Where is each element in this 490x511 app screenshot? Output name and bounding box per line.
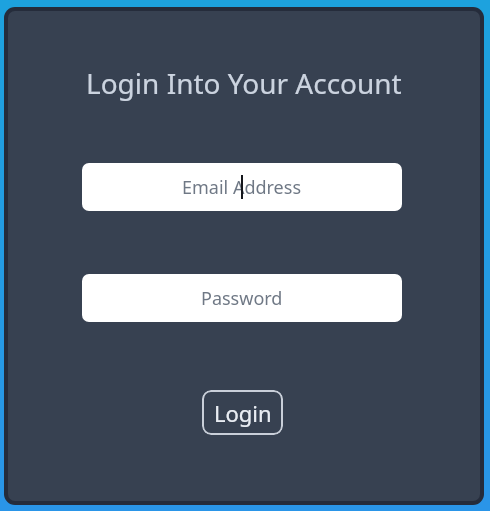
button[interactable]: Email Address	[82, 163, 402, 211]
button[interactable]: Password	[82, 274, 402, 322]
staticText: Email Address	[182, 175, 302, 200]
staticText: Login	[214, 398, 272, 428]
button[interactable]: Login	[202, 390, 283, 435]
staticText: Login Into Your Account	[86, 64, 402, 102]
staticText: Password	[201, 286, 283, 311]
